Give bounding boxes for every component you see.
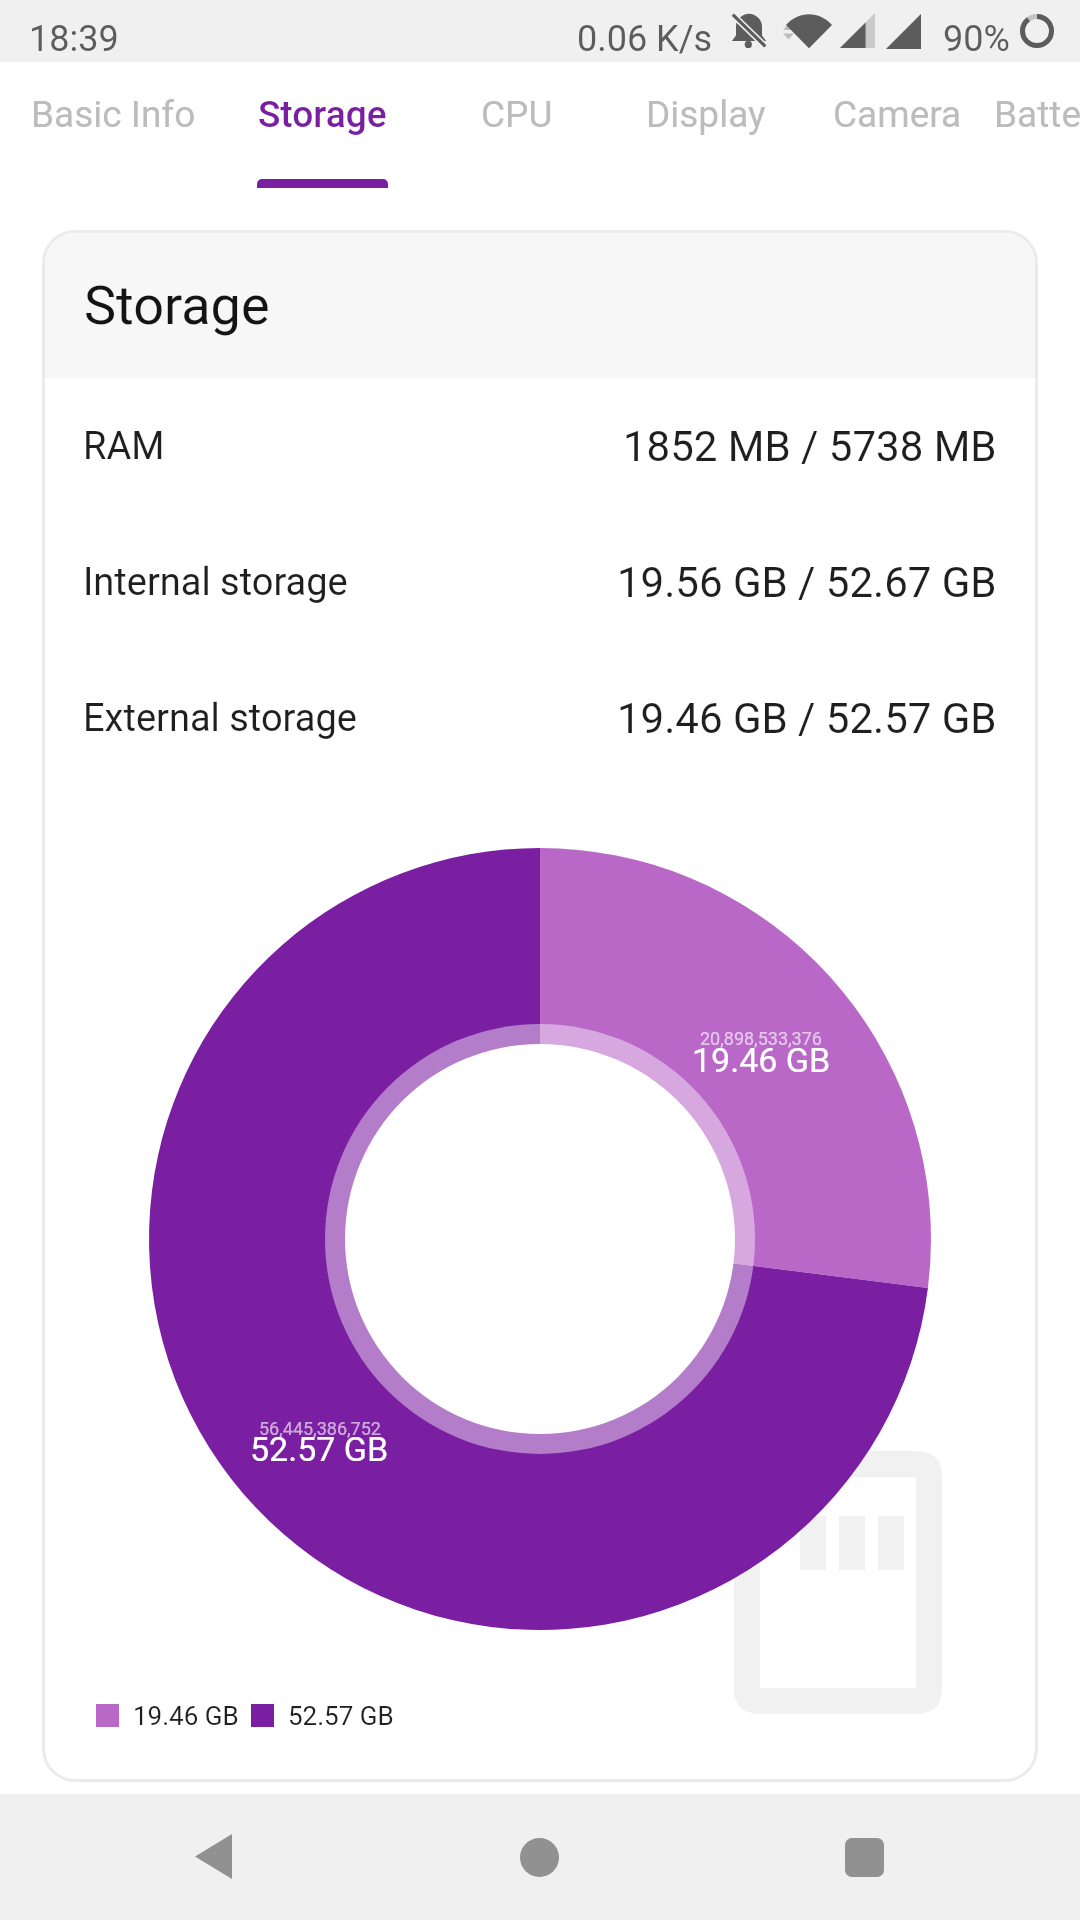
button[interactable]: Recent apps bbox=[801, 1794, 927, 1920]
button[interactable]: External storage bbox=[45, 650, 1035, 786]
staticText: Battery bbox=[994, 93, 1080, 136]
staticText: External storage bbox=[83, 696, 357, 741]
staticText: 19.56 GB / 52.67 GB bbox=[617, 558, 997, 607]
staticText: 20,898,533,376 bbox=[700, 1028, 822, 1049]
staticText: Camera bbox=[833, 93, 962, 136]
staticText: 90% bbox=[943, 18, 1010, 60]
staticText: 56,445,386,752 bbox=[259, 1418, 381, 1439]
button[interactable]: Battery bbox=[994, 62, 1080, 230]
staticText: 0.06 K/s bbox=[577, 18, 713, 60]
button[interactable]: Basic Info bbox=[0, 62, 226, 230]
staticText: RAM bbox=[83, 424, 165, 469]
button[interactable]: Display bbox=[609, 62, 802, 230]
button[interactable]: Camera bbox=[801, 62, 994, 230]
staticText: CPU bbox=[481, 93, 553, 136]
staticText: 19.46 GB / 52.57 GB bbox=[617, 694, 997, 743]
button[interactable]: RAM bbox=[45, 378, 1035, 514]
staticText: Storage bbox=[84, 274, 270, 337]
staticText: 18:39 bbox=[29, 18, 119, 60]
staticText: 52.57 GB bbox=[250, 1429, 389, 1469]
staticText: 1852 MB / 5738 MB bbox=[623, 422, 997, 471]
staticText: 52.57 GB bbox=[288, 1701, 394, 1731]
staticText: 19.46 GB bbox=[133, 1701, 239, 1731]
button[interactable]: Storage bbox=[226, 62, 419, 230]
button[interactable]: Internal storage bbox=[45, 514, 1035, 650]
staticText: Storage bbox=[258, 93, 387, 136]
staticText: Basic Info bbox=[31, 93, 196, 136]
button[interactable]: CPU bbox=[420, 62, 613, 230]
button[interactable]: Back bbox=[150, 1793, 276, 1919]
staticText: 19.46 GB bbox=[692, 1040, 831, 1080]
staticText: Internal storage bbox=[83, 560, 348, 605]
staticText: Display bbox=[646, 93, 766, 136]
button[interactable]: Home bbox=[476, 1795, 602, 1920]
